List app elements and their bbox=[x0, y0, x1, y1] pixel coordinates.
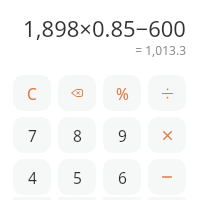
button[interactable]: 8 bbox=[58, 117, 96, 153]
button[interactable]: Multiply bbox=[148, 117, 186, 153]
staticText: 9 bbox=[118, 125, 127, 146]
staticText: C bbox=[27, 83, 37, 104]
staticText: 4 bbox=[28, 167, 37, 188]
button[interactable]: 9 bbox=[103, 117, 141, 153]
button[interactable]: % bbox=[103, 75, 141, 111]
button[interactable]: C bbox=[13, 75, 51, 111]
button[interactable]: Backspace bbox=[58, 75, 96, 111]
button[interactable]: 6 bbox=[103, 159, 141, 195]
staticText: 1,898×0.85−600 bbox=[9, 13, 200, 43]
button[interactable]: Minus bbox=[148, 159, 186, 195]
button[interactable]: 5 bbox=[58, 159, 96, 195]
staticText: 5 bbox=[73, 167, 82, 188]
staticText: 8 bbox=[73, 125, 82, 146]
button[interactable]: 4 bbox=[13, 159, 51, 195]
staticText: 7 bbox=[28, 125, 37, 146]
staticText: % bbox=[116, 83, 129, 104]
staticText: 6 bbox=[118, 167, 127, 188]
button[interactable]: 7 bbox=[13, 117, 51, 153]
staticText: = 1,013.3 bbox=[0, 42, 186, 58]
button[interactable]: Divide bbox=[148, 75, 186, 111]
